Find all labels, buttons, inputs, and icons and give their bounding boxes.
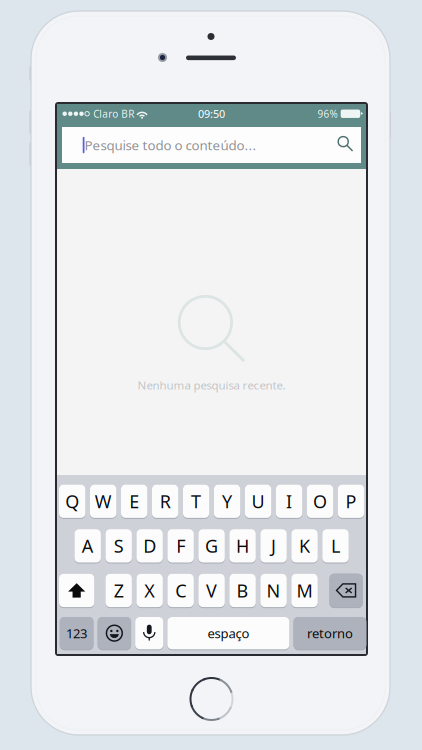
staticText: J (271, 533, 276, 558)
button[interactable]: Y (214, 484, 240, 519)
staticText: 96% (317, 107, 337, 120)
button[interactable]: N (260, 574, 287, 608)
button[interactable]: H (229, 529, 256, 563)
staticText: U (252, 489, 265, 513)
staticText: Y (222, 489, 232, 513)
button[interactable]: D (136, 529, 163, 563)
staticText: M (296, 578, 312, 603)
button[interactable]: V (198, 574, 225, 608)
button[interactable]: E (121, 484, 147, 519)
button[interactable]: W (90, 484, 116, 519)
staticText: 09:50 (198, 106, 225, 121)
staticText: espaço (207, 624, 249, 642)
staticText: N (267, 578, 281, 603)
button[interactable]: L (322, 529, 349, 563)
staticText: P (345, 489, 356, 513)
staticText: S (114, 533, 124, 558)
button[interactable]: U (245, 484, 271, 519)
button[interactable]: Z (105, 574, 132, 608)
button[interactable]: G (198, 529, 225, 563)
staticText: X (144, 578, 155, 603)
button[interactable]: B (229, 574, 256, 608)
button[interactable]: T (183, 484, 209, 519)
button[interactable]: C (167, 574, 194, 608)
button[interactable]: Q (59, 484, 85, 519)
staticText: G (205, 533, 218, 558)
staticText: B (237, 578, 249, 603)
staticText: A (82, 533, 94, 558)
staticText: Z (114, 578, 124, 603)
staticText: H (236, 533, 249, 558)
staticText: D (143, 533, 156, 558)
staticText: I (286, 489, 292, 513)
staticText: T (191, 489, 201, 513)
button[interactable]: I (276, 484, 302, 519)
button[interactable]: Delete (329, 574, 363, 608)
staticText: F (176, 533, 185, 558)
staticText: W (95, 489, 112, 513)
button[interactable]: A (74, 529, 101, 563)
button[interactable]: R (152, 484, 178, 519)
staticText: Pesquise todo o conteúdo... (84, 136, 256, 154)
staticText: Claro BR (93, 107, 134, 120)
button[interactable]: K (291, 529, 318, 563)
button[interactable]: Emoji (98, 617, 131, 650)
staticText: C (175, 578, 186, 603)
staticText: 123 (66, 624, 87, 642)
staticText: K (299, 533, 310, 558)
staticText: V (206, 578, 217, 603)
staticText: retorno (307, 624, 353, 642)
staticText: L (331, 533, 340, 558)
button[interactable]: F (167, 529, 194, 563)
staticText: Q (65, 489, 79, 513)
button[interactable]: M (291, 574, 318, 608)
staticText: Nenhuma pesquisa recente. (137, 377, 285, 393)
button[interactable]: Pesquise todo o conteúdo (62, 127, 361, 163)
button[interactable]: Dictation (135, 617, 163, 650)
button[interactable]: espaço (167, 617, 289, 650)
staticText: R (160, 489, 171, 513)
button[interactable]: O (307, 484, 333, 519)
staticText: E (129, 489, 139, 513)
button[interactable]: X (136, 574, 163, 608)
button[interactable]: Shift (59, 574, 94, 608)
button[interactable]: S (105, 529, 132, 563)
staticText: O (313, 489, 327, 513)
button[interactable]: P (338, 484, 364, 519)
button[interactable]: 123 (60, 617, 93, 650)
button[interactable]: retorno (293, 617, 366, 650)
button[interactable]: J (260, 529, 287, 563)
